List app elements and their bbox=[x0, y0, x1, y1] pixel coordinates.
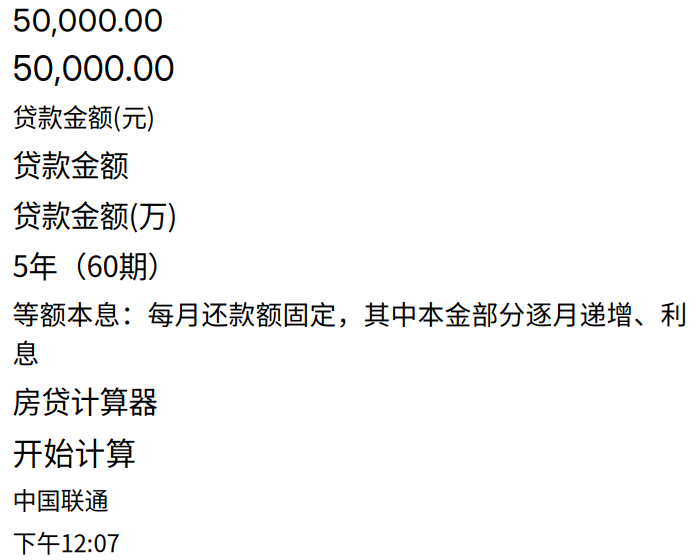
staticText: 贷款金额(万) bbox=[12, 193, 177, 235]
staticText: 等额本息：每月还款额固定，其中本金部分逐月递增、利息 bbox=[12, 294, 687, 371]
staticText: 贷款金额 bbox=[12, 142, 128, 185]
staticText: 贷款金额(元) bbox=[12, 97, 155, 134]
staticText: 开始计算 bbox=[12, 429, 136, 474]
staticText: 下午12:07 bbox=[12, 524, 119, 559]
staticText: 50,000.00 bbox=[12, 1, 163, 39]
staticText: 5年（60期） bbox=[12, 243, 176, 286]
staticText: 中国联通 bbox=[12, 482, 108, 516]
staticText: 房贷计算器 bbox=[12, 379, 157, 421]
staticText: 50,000.00 bbox=[12, 47, 174, 89]
